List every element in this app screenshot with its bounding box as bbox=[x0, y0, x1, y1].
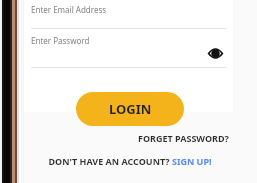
button[interactable]: DON'T HAVE AN ACCOUNT? SIGN UP! bbox=[46, 153, 214, 169]
button[interactable]: Show password bbox=[206, 44, 224, 62]
staticText: Enter Email Address bbox=[31, 4, 107, 15]
button[interactable]: Enter Password bbox=[31, 33, 226, 68]
staticText: LOGIN bbox=[109, 100, 152, 118]
button[interactable]: Enter Email Address bbox=[31, 0, 226, 29]
button[interactable]: LOGIN bbox=[76, 92, 184, 126]
staticText: FORGET PASSWORD? bbox=[138, 132, 229, 144]
staticText: DON'T HAVE AN ACCOUNT? SIGN UP! bbox=[48, 155, 212, 167]
staticText: Enter Password bbox=[31, 35, 90, 46]
button[interactable]: FORGET PASSWORD? bbox=[136, 130, 231, 146]
